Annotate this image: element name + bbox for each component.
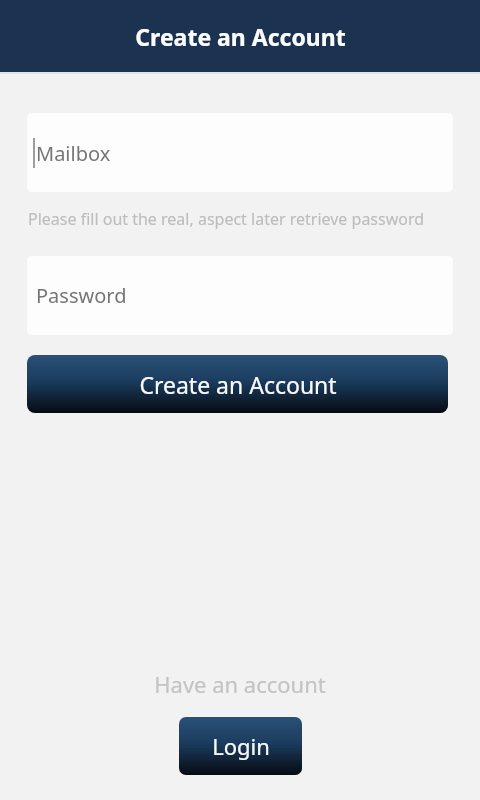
staticText: Password	[36, 282, 127, 309]
staticText: Create an Account	[135, 21, 346, 52]
button[interactable]: Login	[179, 717, 302, 775]
staticText: Create an Account	[139, 369, 337, 400]
button[interactable]: Create an Account	[27, 355, 448, 413]
button[interactable]: Mailbox	[27, 113, 453, 192]
staticText: Mailbox	[36, 140, 111, 167]
staticText: Please fill out the real, aspect later r…	[28, 208, 425, 230]
button[interactable]: Password	[27, 256, 453, 335]
staticText: Have an account	[154, 669, 326, 699]
staticText: Login	[212, 731, 270, 761]
